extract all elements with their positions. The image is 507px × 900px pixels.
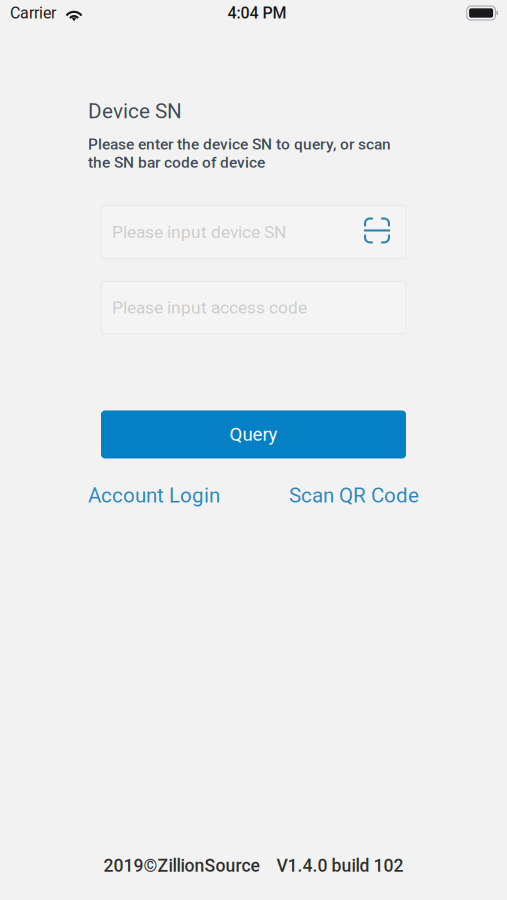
staticText: Please input device SN (112, 222, 286, 242)
button[interactable]: Account Login (88, 483, 220, 508)
staticText: 2019©ZillionSource (103, 855, 259, 876)
button[interactable]: Scan bar code (360, 210, 394, 253)
staticText: Device SN (88, 99, 182, 123)
button[interactable]: Query (101, 410, 406, 458)
staticText: V1.4.0 build 102 (276, 855, 403, 876)
staticText: Query (229, 423, 277, 445)
button[interactable]: Scan QR Code (289, 483, 419, 508)
staticText: Scan QR Code (289, 483, 419, 508)
staticText: 4:04 PM (227, 4, 286, 22)
staticText: Carrier (10, 4, 56, 22)
staticText: Please input access code (112, 297, 307, 318)
staticText: Account Login (88, 483, 220, 508)
staticText: Please enter the device SN to query, or … (88, 135, 391, 171)
